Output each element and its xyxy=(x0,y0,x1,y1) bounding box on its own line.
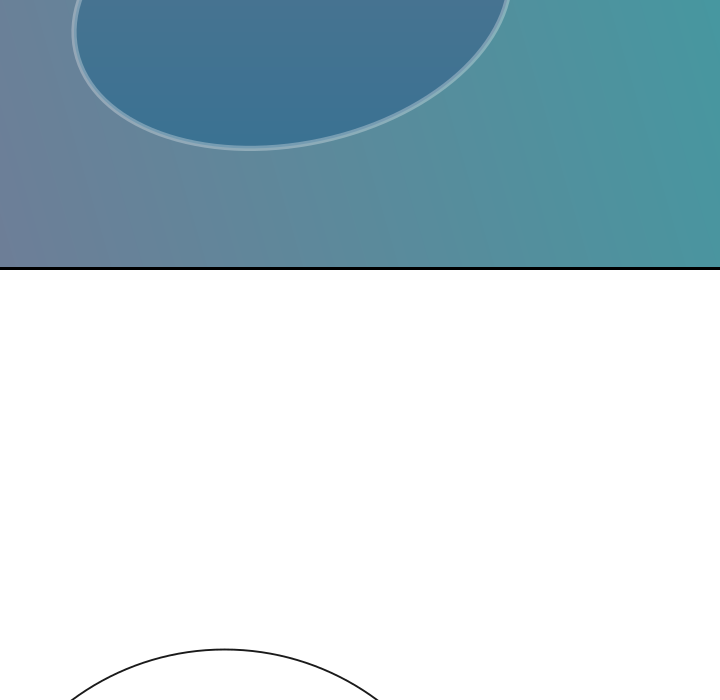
button[interactable]: Detail xyxy=(0,0,720,700)
button[interactable]: Artwork xyxy=(0,0,720,267)
